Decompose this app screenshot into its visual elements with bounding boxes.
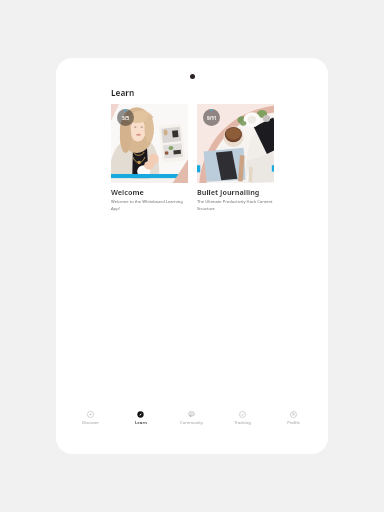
button[interactable]: Community	[166, 406, 217, 430]
staticText: Community	[180, 420, 203, 426]
staticText: Learn	[111, 87, 135, 98]
button[interactable]: Learn	[115, 406, 166, 430]
button[interactable]: Profile	[268, 406, 319, 430]
button[interactable]: Tracking	[217, 406, 268, 430]
staticText: 5/5	[122, 115, 130, 121]
button[interactable]: 5/5	[111, 104, 188, 211]
staticText: 9/11	[207, 115, 217, 121]
staticText: Bullet Journalling	[197, 187, 260, 197]
button[interactable]: 9/11	[197, 104, 274, 211]
staticText: Discover	[82, 420, 99, 426]
button[interactable]: Discover	[65, 406, 115, 430]
staticText: Profile	[287, 420, 300, 426]
staticText: The Ultimate Productivity Hack Content S…	[197, 199, 274, 211]
staticText: Tracking	[234, 420, 251, 426]
staticText: Welcome to the Whiteboard Learning App!	[111, 199, 188, 211]
staticText: Welcome	[111, 187, 144, 197]
staticText: Learn	[135, 420, 147, 426]
